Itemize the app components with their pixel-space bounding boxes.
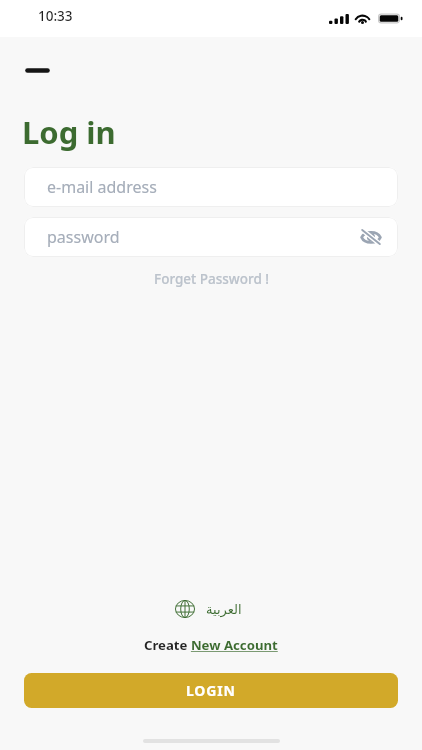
button[interactable]: Back <box>16 56 58 84</box>
button[interactable]: password <box>24 217 398 257</box>
button[interactable]: Forget Password ! <box>144 265 279 293</box>
staticText: LOGIN <box>186 681 236 700</box>
staticText: 10:33 <box>38 7 73 25</box>
button[interactable]: Show password <box>357 223 385 251</box>
staticText: العربية <box>206 602 242 617</box>
button[interactable]: LOGIN <box>24 673 398 708</box>
staticText: Create New Account <box>144 636 278 654</box>
staticText: e-mail address <box>47 176 157 198</box>
button[interactable]: Create New Account <box>136 633 286 657</box>
staticText: password <box>47 226 120 248</box>
staticText: Log in <box>22 111 116 153</box>
button[interactable]: العربية <box>165 594 252 624</box>
staticText: Forget Password ! <box>154 270 269 288</box>
button[interactable]: e-mail address <box>24 167 398 207</box>
